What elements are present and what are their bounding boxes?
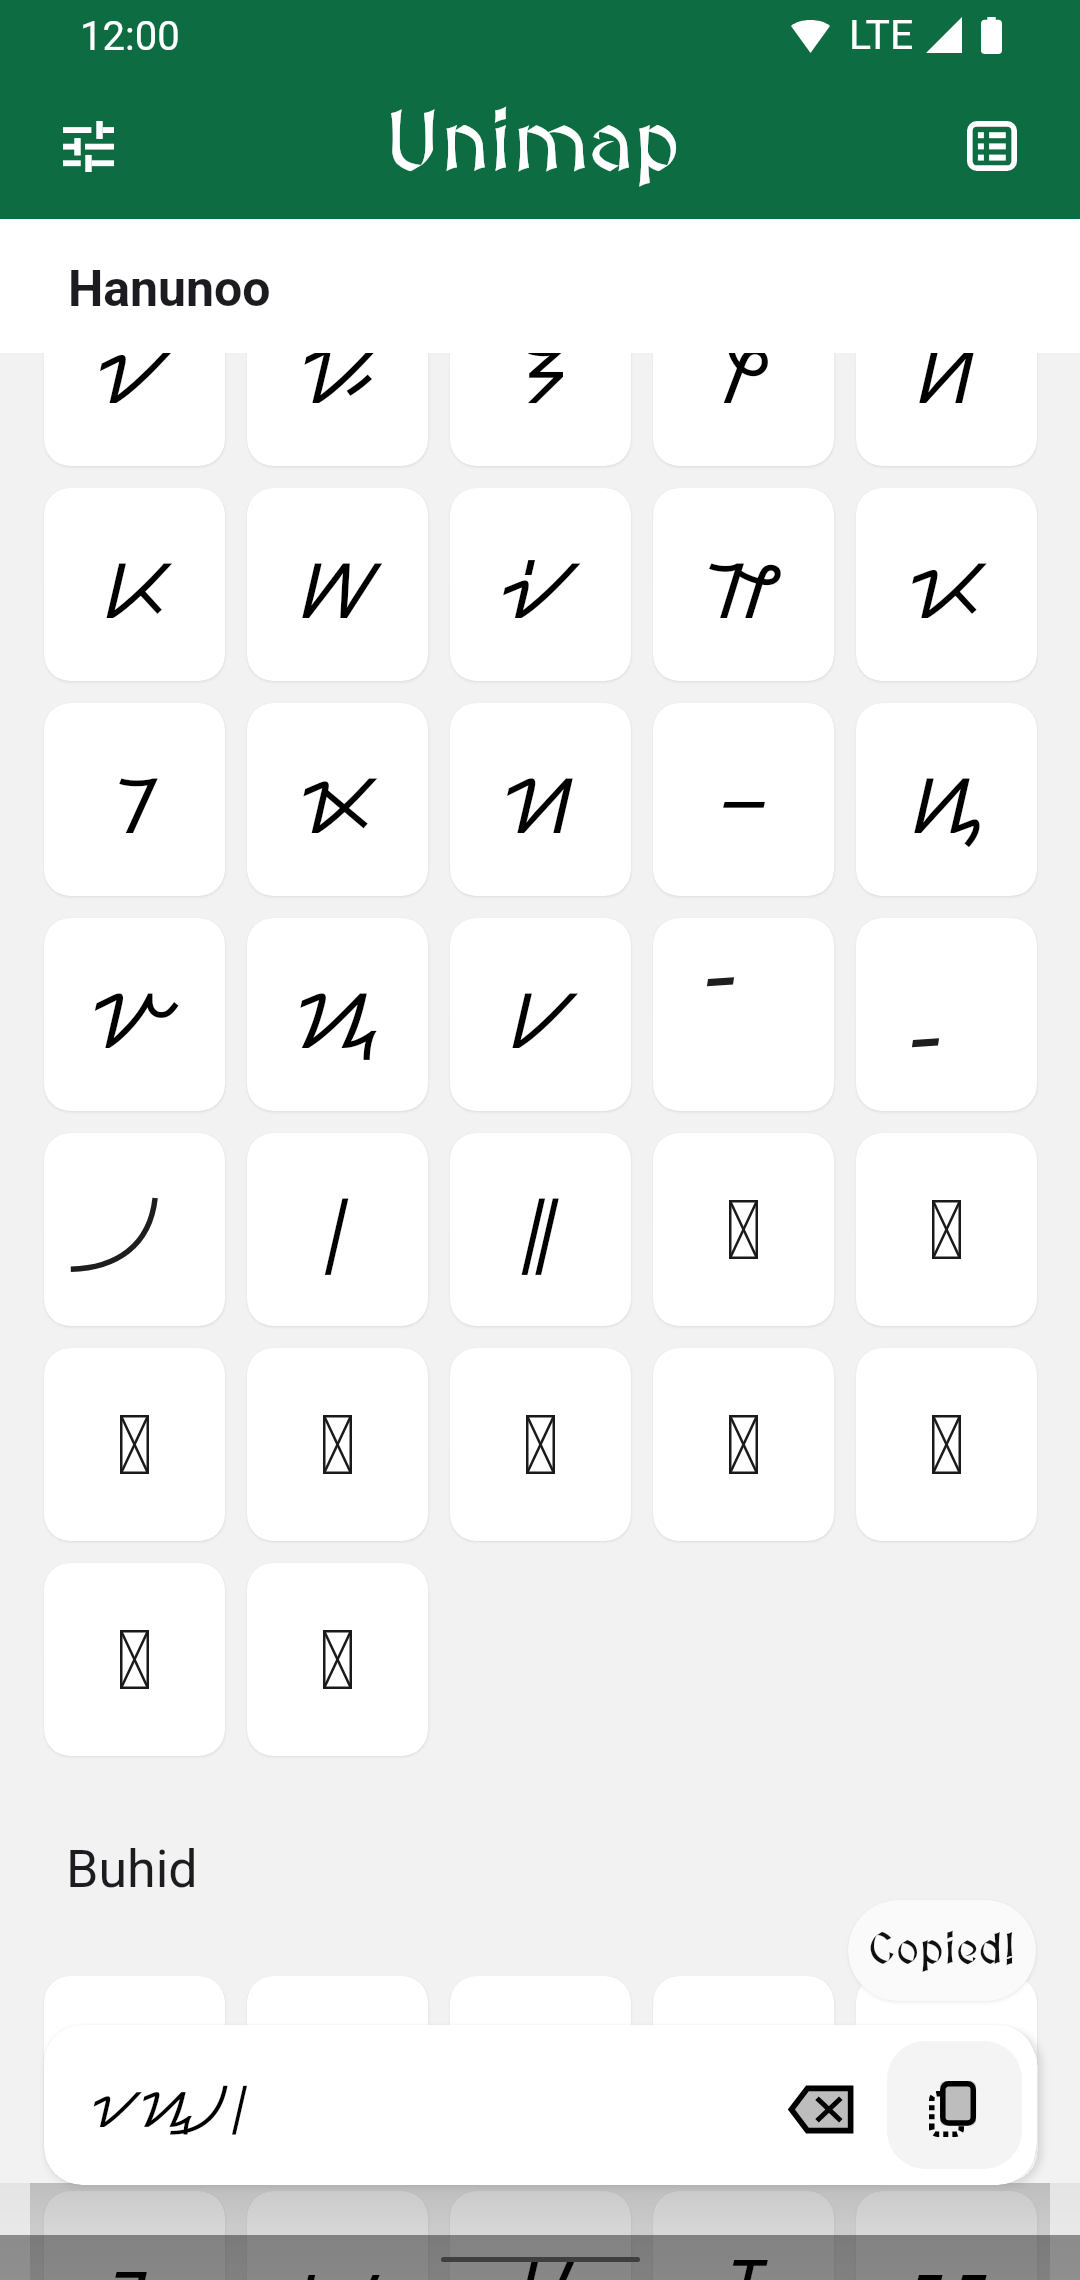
button[interactable]: U+172A: [44, 703, 225, 896]
button[interactable]: U+1730: [247, 918, 428, 1111]
button[interactable]: U+1731: [450, 918, 631, 1111]
button[interactable]: U+1726: [247, 488, 428, 681]
button[interactable]: U+1727: [450, 488, 631, 681]
staticText: ᜦ: [296, 526, 379, 643]
button[interactable]: U+1720: [44, 273, 225, 466]
staticText: ᜧ: [503, 526, 578, 643]
button[interactable]: U+173D: [856, 1348, 1037, 1541]
staticText: ᝆ: [293, 2229, 382, 2280]
button[interactable]: U+1737: [653, 1133, 834, 1326]
button[interactable]: U+172F: [44, 918, 225, 1111]
button[interactable]: Unicode blocks list: [937, 91, 1047, 201]
staticText: ᜠᜰ᜴᜵: [92, 2068, 768, 2143]
staticText: ᜣ: [717, 311, 771, 428]
staticText: ᜯ: [91, 956, 179, 1073]
button[interactable]: Copy to clipboard: [887, 2041, 1022, 2169]
button[interactable]: U+1744: [856, 1976, 1037, 2169]
staticText: ᝀ: [99, 2014, 171, 2131]
button[interactable]: U+1735: [247, 1133, 428, 1326]
button[interactable]: U+1734: [44, 1133, 225, 1326]
staticText: ᜭ: [717, 741, 770, 858]
button[interactable]: U+173C: [653, 1348, 834, 1541]
button[interactable]: U+1749: [856, 2191, 1037, 2280]
button[interactable]: U+173A: [247, 1348, 428, 1541]
staticText: ᜫ: [300, 741, 375, 858]
staticText: ᜡ: [300, 311, 376, 428]
button[interactable]: U+1729: [856, 488, 1037, 681]
button[interactable]: U+1738: [856, 1133, 1037, 1326]
button[interactable]: U+173E: [44, 1563, 225, 1756]
button[interactable]: U+1740: [44, 1976, 225, 2169]
button[interactable]: U+1743: [653, 1976, 834, 2169]
button[interactable]: U+1723: [653, 273, 834, 466]
staticText: ᜤ: [913, 311, 981, 428]
staticText: Copied!: [868, 1926, 1016, 1976]
staticText: ᜵: [323, 1171, 352, 1288]
button[interactable]: U+1725: [44, 488, 225, 681]
button[interactable]: U+172C: [450, 703, 631, 896]
button[interactable]: U+1736: [450, 1133, 631, 1326]
button[interactable]: U+1728: [653, 488, 834, 681]
button[interactable]: U+1721: [247, 273, 428, 466]
button[interactable]: Filter settings: [33, 91, 143, 201]
button[interactable]: U+1733: [856, 918, 1037, 1111]
button[interactable]: U+173B: [450, 1348, 631, 1541]
staticText: Unimap: [385, 98, 681, 193]
button[interactable]: U+173F: [247, 1563, 428, 1756]
staticText: ᜰ: [296, 956, 379, 1073]
staticText: ᝄ: [921, 2014, 973, 2131]
button[interactable]: U+1722: [450, 273, 631, 466]
staticText: ᜶: [520, 1171, 562, 1288]
button[interactable]: U+172D: [653, 703, 834, 896]
button[interactable]: U+1746: [247, 2191, 428, 2280]
staticText: ᜢ: [518, 311, 563, 428]
button[interactable]: U+1739: [44, 1348, 225, 1541]
button[interactable]: U+1732: [653, 918, 834, 1111]
button[interactable]: U+1745: [44, 2191, 225, 2280]
staticText: Hanunoo: [68, 260, 271, 319]
staticText: ᝈ: [725, 2229, 763, 2280]
staticText: 12:00: [80, 13, 180, 60]
button[interactable]: U+172E: [856, 703, 1037, 896]
staticText: ᝇ: [505, 2229, 576, 2280]
staticText: ᜩ: [909, 526, 985, 643]
button[interactable]: U+1747: [450, 2191, 631, 2280]
staticText: ᝉ: [911, 2229, 983, 2280]
button[interactable]: U+1748: [653, 2191, 834, 2280]
button[interactable]: U+1724: [856, 273, 1037, 466]
button[interactable]: Backspace: [768, 2055, 868, 2155]
staticText: ᜪ: [112, 741, 157, 858]
staticText: Buhid: [66, 1839, 198, 1900]
staticText: ᝅ: [100, 2229, 170, 2280]
staticText: LTE: [849, 11, 914, 59]
staticText: ᜨ: [702, 526, 786, 643]
staticText: ᜬ: [503, 741, 579, 858]
staticText: ᜮ: [908, 741, 985, 858]
button[interactable]: U+172B: [247, 703, 428, 896]
staticText: ᜱ: [506, 956, 576, 1073]
staticText: ᜥ: [100, 526, 170, 643]
staticText: ᜠ: [97, 311, 173, 428]
